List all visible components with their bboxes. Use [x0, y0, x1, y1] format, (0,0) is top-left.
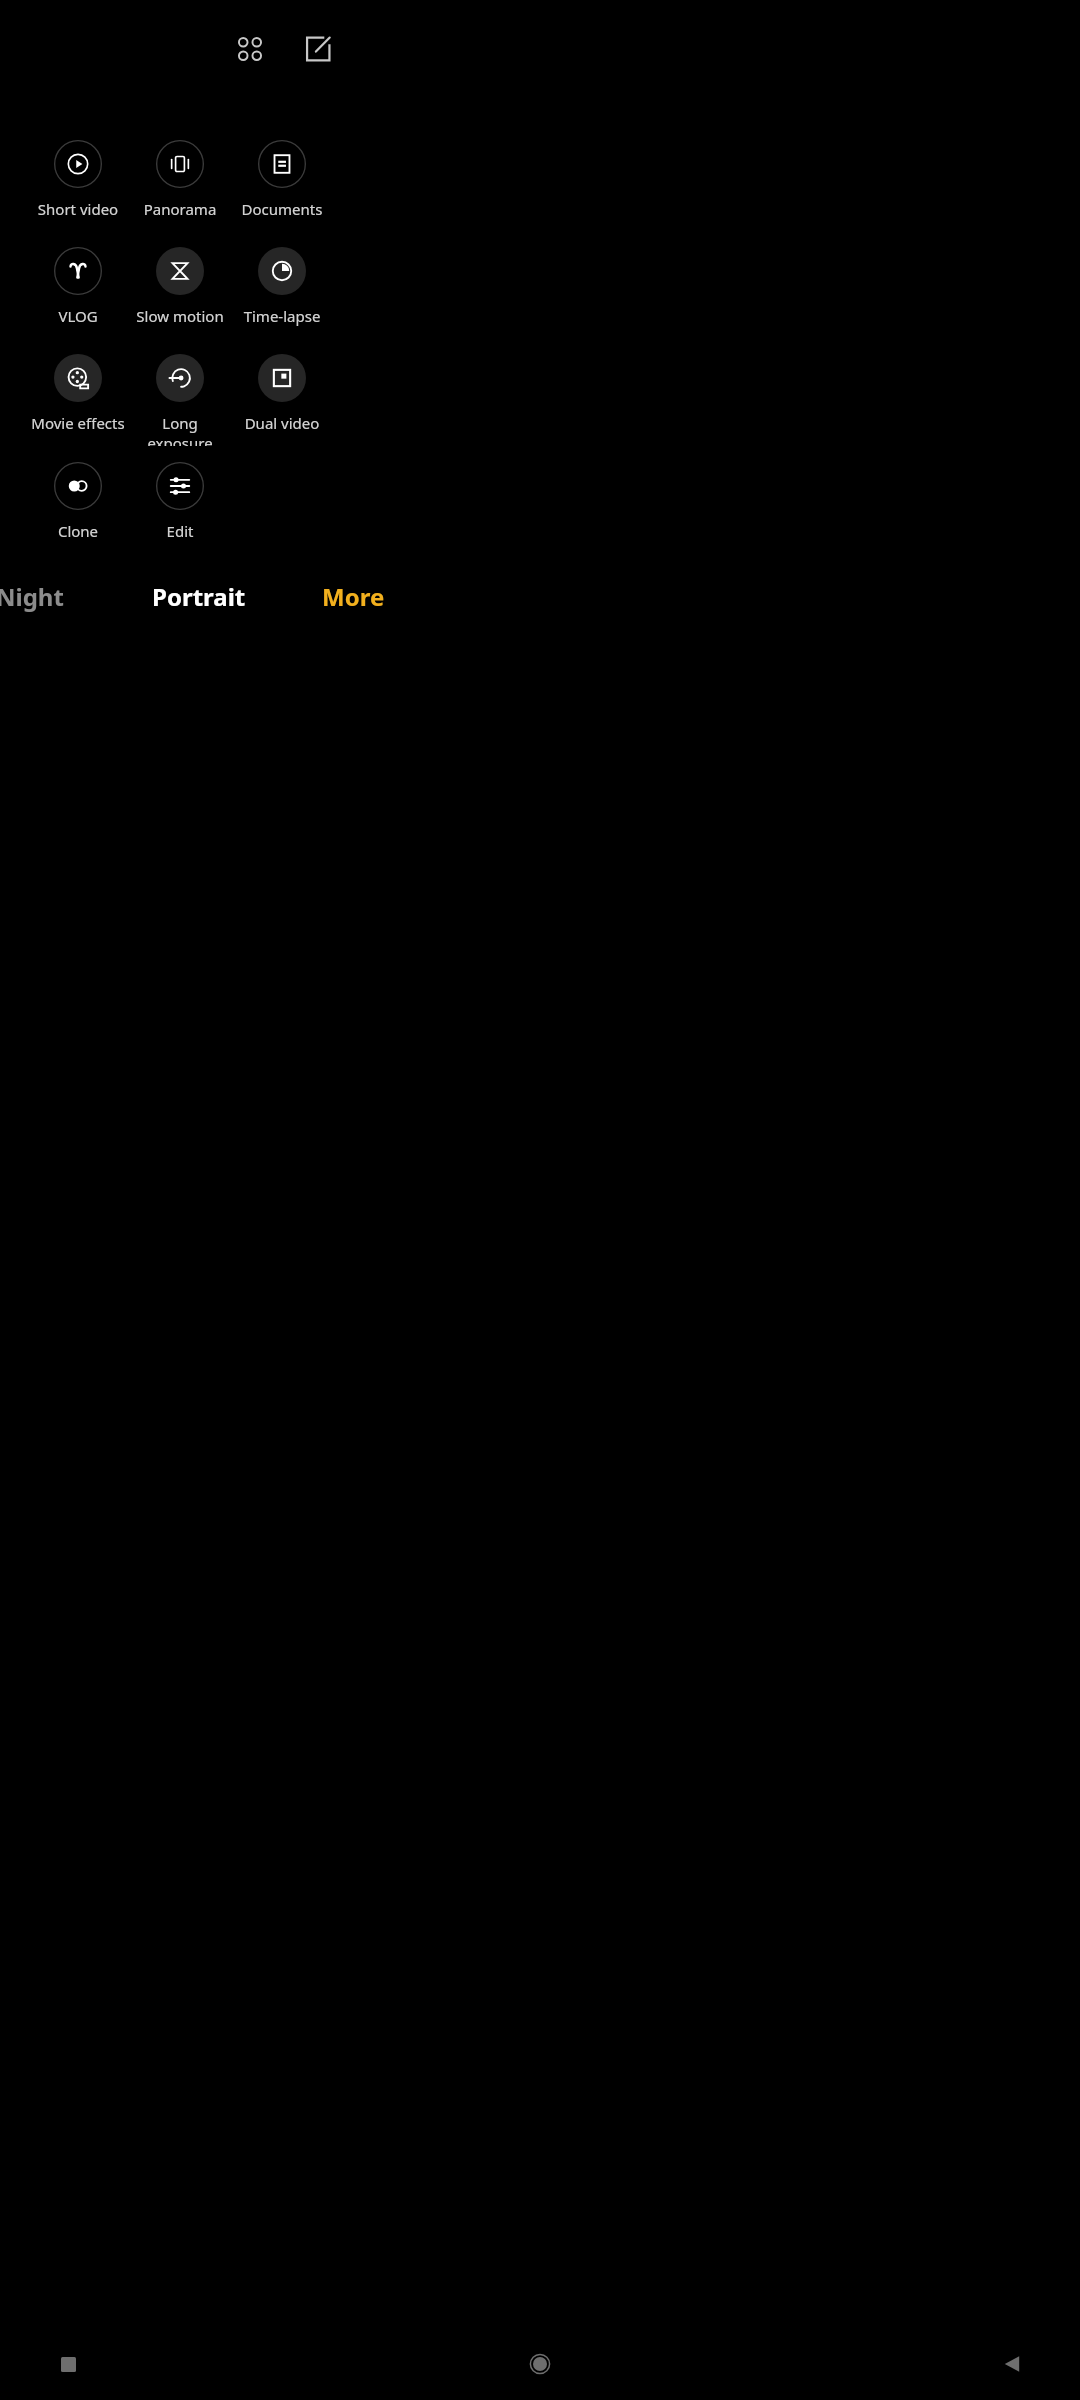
- staticText: Edit: [129, 521, 231, 541]
- button[interactable]: Recent apps: [40, 2336, 96, 2392]
- button[interactable]: Panorama: [129, 140, 231, 232]
- staticText: Clone: [27, 521, 129, 541]
- staticText: Slow motion: [129, 306, 231, 326]
- staticText: More: [322, 580, 385, 613]
- staticText: Panorama: [129, 199, 231, 219]
- button[interactable]: Movie effects: [27, 354, 129, 446]
- staticText: Short video: [27, 199, 129, 219]
- button[interactable]: Edit modes: [300, 31, 336, 67]
- staticText: Portrait: [152, 580, 246, 613]
- button[interactable]: Dual video: [231, 354, 333, 446]
- button[interactable]: Night: [0, 580, 64, 613]
- staticText: Long exposure: [129, 413, 231, 446]
- button[interactable]: Documents: [231, 140, 333, 232]
- button[interactable]: Portrait: [152, 580, 246, 613]
- staticText: Night: [0, 580, 64, 613]
- button[interactable]: Long exposure: [129, 354, 231, 446]
- staticText: Documents: [231, 199, 333, 219]
- button[interactable]: Home: [512, 2336, 568, 2392]
- button[interactable]: Clone: [27, 462, 129, 554]
- button[interactable]: Back: [984, 2336, 1040, 2392]
- staticText: VLOG: [27, 306, 129, 326]
- button[interactable]: Modes grid: [232, 31, 268, 67]
- button[interactable]: Slow motion: [129, 247, 231, 339]
- button[interactable]: VLOG: [27, 247, 129, 339]
- button[interactable]: Edit: [129, 462, 231, 554]
- staticText: Movie effects: [27, 413, 129, 433]
- button[interactable]: More: [322, 580, 385, 613]
- button[interactable]: Time-lapse: [231, 247, 333, 339]
- button[interactable]: Short video: [27, 140, 129, 232]
- staticText: Time-lapse: [231, 306, 333, 326]
- staticText: Dual video: [231, 413, 333, 433]
